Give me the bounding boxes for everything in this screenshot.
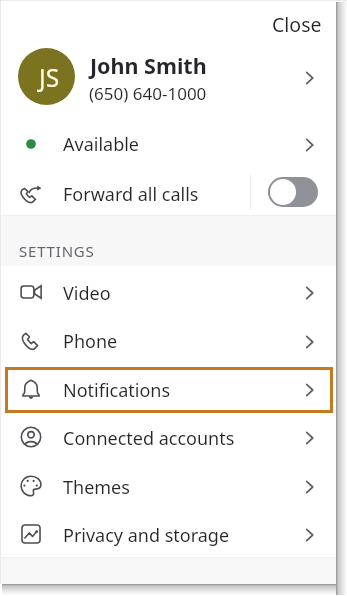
staticText: Privacy and storage (63, 523, 230, 548)
staticText: Connected accounts (63, 426, 235, 451)
staticText: Close (272, 11, 322, 38)
button[interactable] (1, 462, 336, 510)
staticText: SETTINGS (19, 241, 95, 261)
button[interactable]: Forward all calls toggle (268, 177, 318, 207)
button[interactable] (1, 317, 336, 365)
staticText: John Smith (90, 51, 207, 80)
staticText: Phone (63, 329, 118, 354)
staticText: Video (63, 281, 111, 306)
staticText: (650) 640-1000 (89, 82, 207, 105)
button[interactable] (1, 413, 336, 461)
staticText: Notifications (63, 378, 171, 403)
staticText: JS (39, 61, 60, 94)
button[interactable] (1, 510, 336, 558)
button[interactable] (5, 367, 333, 413)
staticText: Available (63, 132, 139, 157)
button[interactable] (1, 170, 336, 215)
button[interactable]: Close (262, 6, 330, 42)
button[interactable] (1, 122, 336, 168)
staticText: Forward all calls (63, 182, 199, 207)
button[interactable] (1, 42, 336, 112)
staticText: Themes (63, 475, 130, 500)
button[interactable] (1, 268, 336, 316)
